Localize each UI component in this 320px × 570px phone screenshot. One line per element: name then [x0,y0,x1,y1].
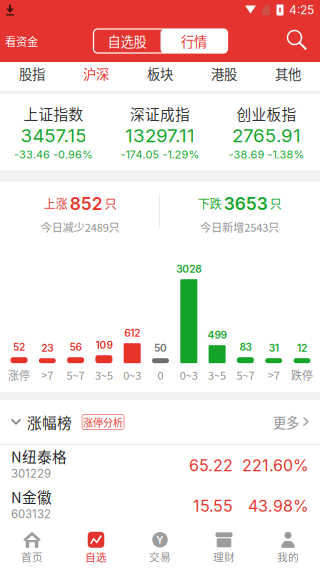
staticText: 创业板指 [237,103,297,124]
staticText: 只 [105,195,117,212]
staticText: 今日新增2543只 [200,219,279,235]
staticText: 0 [157,367,163,383]
button[interactable]: N纽泰格 [0,445,320,486]
staticText: 12 [297,342,307,354]
button[interactable]: 看资金 [5,20,45,62]
staticText: 4:25 [289,3,314,17]
button[interactable]: 行情 [160,29,227,53]
staticText: 行情 [181,31,207,51]
staticText: 83 [239,341,251,353]
staticText: 港股 [211,64,237,83]
staticText: 50 [154,342,167,354]
button[interactable]: Y [128,526,192,570]
staticText: 0~3 [180,367,198,383]
staticText: 5~7 [67,367,85,383]
staticText: >7 [268,367,280,383]
button[interactable]: N金徽 [0,486,320,526]
staticText: 65.22 [189,456,233,475]
staticText: 109 [95,339,112,351]
staticText: Y [156,533,164,546]
button[interactable]: 涨幅榜 [11,400,72,444]
staticText: 自选 [85,549,107,564]
button[interactable]: 首页 [0,526,64,570]
staticText: 15.55 [193,496,233,516]
staticText: -38.69 -1.38% [229,148,305,161]
staticText: 只 [270,195,282,212]
staticText: 其他 [275,64,301,83]
staticText: 499 [208,329,227,341]
staticText: -174.05 -1.29% [120,148,199,161]
staticText: 股指 [19,64,45,83]
staticText: 理财 [213,549,235,564]
staticText: 13297.11 [125,124,195,147]
staticText: 301229 [11,467,51,480]
staticText: N金徽 [11,486,52,507]
staticText: >7 [41,367,53,383]
button[interactable]: 自选 [64,526,128,570]
staticText: 看资金 [5,33,38,49]
staticText: 交易 [149,549,171,564]
staticText: 3~5 [208,367,226,383]
staticText: 更多 [273,412,299,432]
button[interactable]: 我的 [256,526,320,570]
staticText: 涨停分析 [83,415,123,429]
staticText: 首页 [21,549,43,564]
button[interactable]: 港股 [192,62,256,91]
button[interactable]: 理财 [192,526,256,570]
staticText: 31 [269,342,279,354]
staticText: 5~7 [236,367,254,383]
staticText: 沪深 [83,64,109,83]
staticText: 852 [70,193,103,214]
button[interactable]: 涨停分析 [82,414,124,429]
staticText: -33.46 -0.96% [14,148,93,161]
button[interactable]: 更多 [273,400,309,444]
staticText: 下跌 [198,195,222,212]
staticText: 43.98% [248,496,309,516]
staticText: 我的 [277,549,299,564]
button[interactable]: 沪深 [64,62,128,91]
button[interactable]: 其他 [256,62,320,91]
staticText: 今日减少2489只 [41,219,120,235]
staticText: 603132 [11,507,51,521]
staticText: N纽泰格 [11,445,67,467]
staticText: 上证指数 [23,103,83,124]
staticText: 跌停 [291,367,313,383]
button[interactable]: 自选股 [93,29,160,53]
staticText: 自选股 [107,31,146,51]
staticText: 0~3 [123,367,141,383]
staticText: 3457.15 [20,124,86,147]
staticText: 板块 [147,64,173,83]
button[interactable]: 股指 [0,62,64,91]
staticText: 221.60% [242,456,309,475]
staticText: 612 [124,327,140,339]
button[interactable] [276,20,320,62]
staticText: 深证成指 [130,103,190,124]
staticText: 23 [41,342,53,354]
staticText: 上涨 [44,195,68,212]
staticText: 3~5 [95,367,113,383]
staticText: 涨幅榜 [27,411,72,433]
staticText: 涨停 [8,367,30,383]
staticText: 3653 [224,193,268,214]
staticText: 3028 [176,263,201,275]
button[interactable]: 板块 [128,62,192,91]
staticText: 56 [70,341,82,353]
staticText: 2765.91 [232,124,301,147]
staticText: 52 [13,341,25,353]
